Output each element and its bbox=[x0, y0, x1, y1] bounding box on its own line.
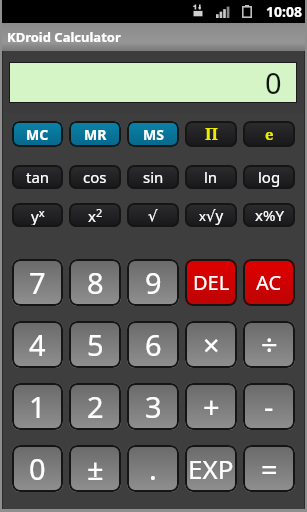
staticText: x%Y bbox=[255, 205, 284, 225]
staticText: 4 bbox=[29, 325, 46, 364]
staticText: 1 bbox=[29, 387, 46, 426]
staticText: ÷ bbox=[261, 325, 278, 364]
other: Signal strength bbox=[216, 6, 230, 18]
staticText: - bbox=[264, 387, 274, 426]
staticText: MS bbox=[143, 125, 164, 144]
staticText: √ bbox=[148, 207, 158, 224]
staticText: KDroid Calculator bbox=[7, 28, 121, 46]
button[interactable]: √ bbox=[127, 203, 179, 227]
button[interactable]: . bbox=[127, 445, 179, 492]
button[interactable]: MC bbox=[12, 121, 63, 147]
staticText: x√y bbox=[199, 205, 224, 225]
staticText: MC bbox=[26, 125, 49, 144]
staticText: 6 bbox=[145, 325, 162, 364]
button[interactable]: x%Y bbox=[243, 203, 295, 227]
button[interactable]: x2 bbox=[69, 203, 121, 227]
button[interactable]: x√y bbox=[185, 203, 237, 227]
button[interactable]: 3 bbox=[127, 383, 179, 430]
other: Battery bbox=[242, 5, 252, 18]
button[interactable]: × bbox=[185, 321, 237, 368]
button[interactable]: 5 bbox=[69, 321, 121, 368]
staticText: 3 bbox=[145, 387, 162, 426]
button[interactable]: tan bbox=[12, 165, 63, 189]
staticText: x2 bbox=[88, 205, 103, 226]
staticText: + bbox=[203, 387, 220, 426]
button[interactable]: + bbox=[185, 383, 237, 430]
staticText: ± bbox=[87, 449, 104, 488]
staticText: log bbox=[258, 167, 281, 187]
staticText: 10:08 bbox=[266, 2, 302, 21]
staticText: 7 bbox=[29, 263, 46, 302]
staticText: EXP bbox=[188, 451, 234, 486]
button[interactable]: 1 bbox=[12, 383, 63, 430]
other: Mobile data 3G bbox=[193, 4, 203, 19]
button[interactable]: ± bbox=[69, 445, 121, 492]
staticText: ln bbox=[204, 167, 218, 187]
staticText: e bbox=[265, 124, 274, 144]
staticText: 5 bbox=[87, 325, 104, 364]
button[interactable]: DEL bbox=[185, 259, 237, 306]
button[interactable]: 6 bbox=[127, 321, 179, 368]
button[interactable]: 2 bbox=[69, 383, 121, 430]
staticText: MR bbox=[84, 125, 107, 144]
button[interactable]: log bbox=[243, 165, 295, 189]
staticText: 0 bbox=[265, 63, 282, 102]
button[interactable]: = bbox=[243, 445, 295, 492]
button[interactable]: Π bbox=[185, 121, 237, 147]
button[interactable]: 4 bbox=[12, 321, 63, 368]
staticText: 0 bbox=[29, 449, 46, 488]
button[interactable]: MS bbox=[127, 121, 179, 147]
button[interactable]: ln bbox=[185, 165, 237, 189]
staticText: × bbox=[203, 325, 220, 364]
staticText: cos bbox=[83, 167, 107, 187]
staticText: 2 bbox=[87, 387, 104, 426]
staticText: DEL bbox=[193, 269, 230, 296]
staticText: . bbox=[149, 449, 157, 488]
button[interactable]: MR bbox=[69, 121, 121, 147]
button[interactable]: sin bbox=[127, 165, 179, 189]
button[interactable]: 7 bbox=[12, 259, 63, 306]
button[interactable]: EXP bbox=[185, 445, 237, 492]
staticText: yx bbox=[31, 205, 45, 226]
button[interactable]: - bbox=[243, 383, 295, 430]
staticText: sin bbox=[143, 167, 164, 187]
button[interactable]: ÷ bbox=[243, 321, 295, 368]
staticText: 8 bbox=[87, 263, 104, 302]
button[interactable]: 0 bbox=[12, 445, 63, 492]
staticText: Π bbox=[205, 123, 218, 145]
staticText: 9 bbox=[145, 263, 162, 302]
button[interactable]: cos bbox=[69, 165, 121, 189]
button[interactable]: 8 bbox=[69, 259, 121, 306]
staticText: tan bbox=[26, 167, 50, 187]
button[interactable]: yx bbox=[12, 203, 63, 227]
staticText: = bbox=[261, 449, 278, 488]
button[interactable]: AC bbox=[243, 259, 295, 306]
staticText: AC bbox=[256, 269, 282, 296]
button[interactable]: e bbox=[243, 121, 295, 147]
button[interactable]: 9 bbox=[127, 259, 179, 306]
